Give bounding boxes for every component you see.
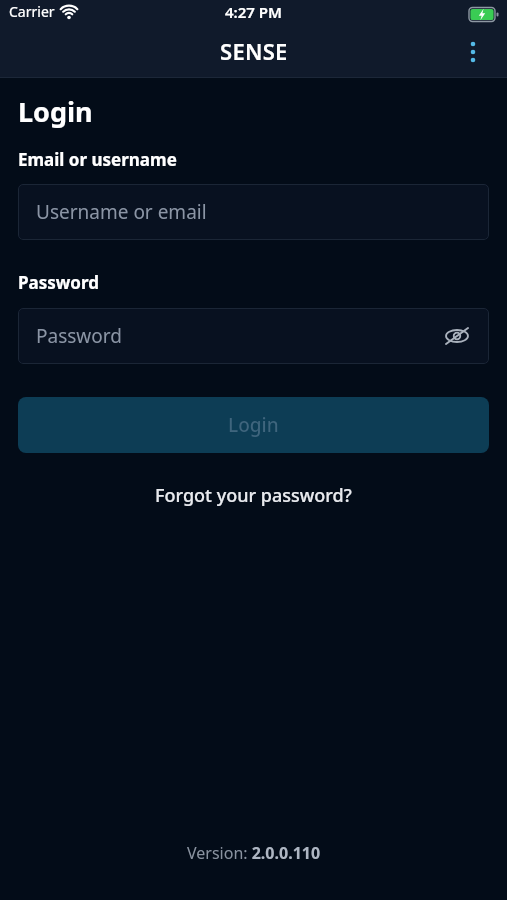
staticText: Login [228, 412, 279, 438]
button[interactable]: Password [18, 308, 489, 364]
staticText: Email or username [18, 148, 177, 171]
staticText: Password [36, 323, 122, 349]
staticText: SENSE [220, 36, 288, 66]
button[interactable] [459, 38, 487, 66]
staticText: Password [18, 271, 99, 294]
staticText: Version: 2.0.0.110 [187, 842, 321, 864]
button[interactable]: Login [18, 397, 489, 453]
staticText: Login [18, 93, 93, 130]
staticText: 4:27 PM [225, 2, 282, 22]
staticText: Forgot your password? [155, 483, 352, 508]
staticText: Carrier [9, 2, 55, 21]
button[interactable]: Username or email [18, 184, 489, 240]
button[interactable]: Forgot your password? [147, 477, 360, 514]
staticText: Username or email [36, 199, 207, 225]
